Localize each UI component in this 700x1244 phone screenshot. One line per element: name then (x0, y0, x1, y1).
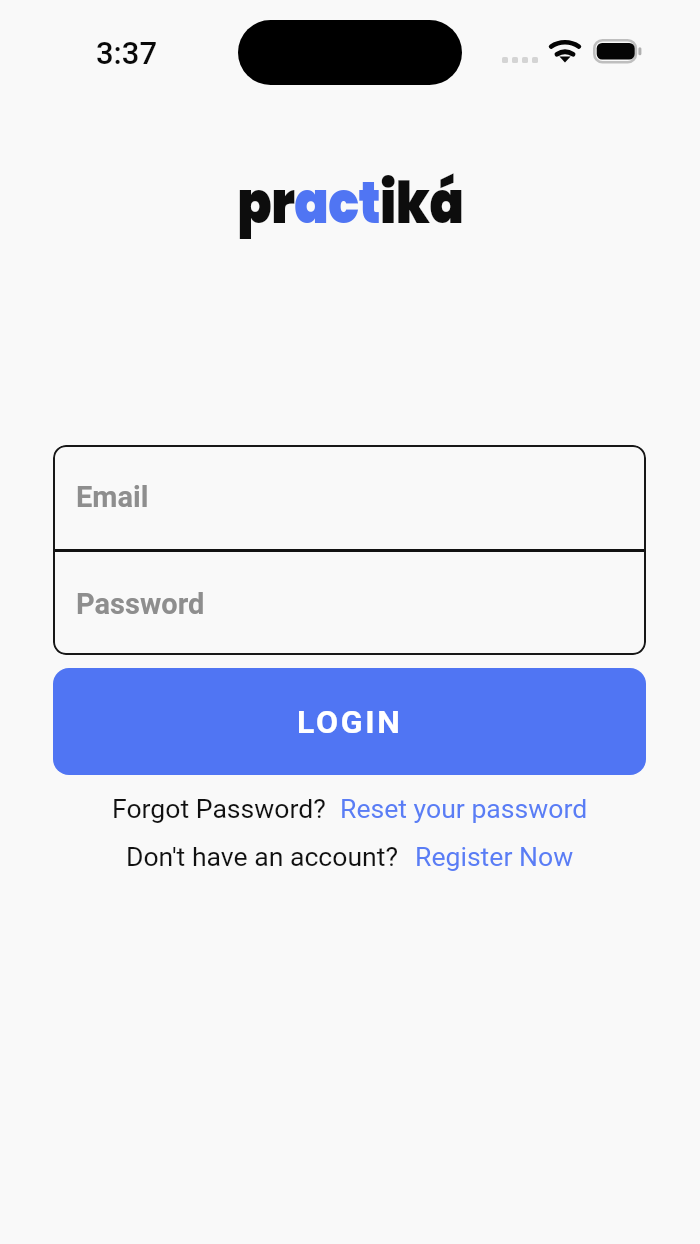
button[interactable]: Reset your password (340, 793, 588, 824)
staticText: Forgot Password? (112, 793, 326, 824)
other: Battery (593, 39, 643, 65)
button[interactable]: Password (53, 552, 646, 655)
other: Wi-Fi (549, 38, 581, 65)
button[interactable]: Register Now (415, 841, 574, 872)
staticText: practiká (237, 163, 464, 243)
button[interactable]: Email (53, 445, 646, 549)
staticText: 3:37 (96, 35, 158, 71)
button[interactable]: LOGIN (53, 668, 646, 775)
staticText: LOGIN (297, 703, 403, 741)
staticText: Reset your password (340, 793, 588, 824)
staticText: Password (76, 587, 205, 621)
staticText: Email (76, 480, 149, 514)
staticText: Don't have an account? (126, 841, 399, 872)
staticText: Register Now (415, 841, 574, 872)
